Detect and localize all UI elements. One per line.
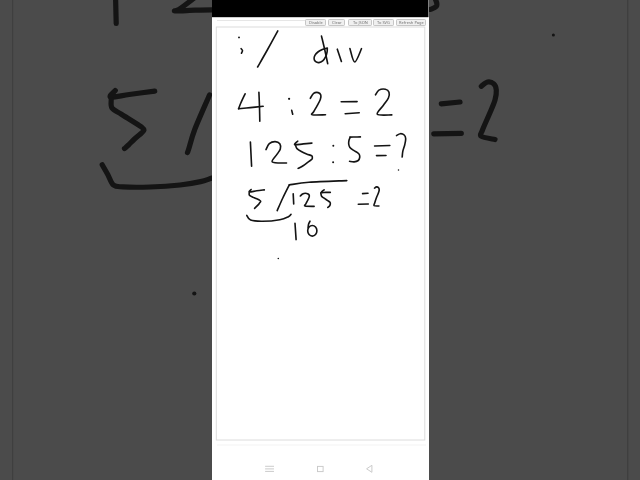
button[interactable]: Clear [328, 19, 345, 26]
staticText: Clear [332, 20, 342, 25]
button[interactable]: To JSON [348, 19, 372, 26]
button[interactable]: Disable [305, 19, 326, 26]
button[interactable]: Handwriting canvas [216, 27, 425, 440]
staticText: To JSON [353, 20, 368, 25]
button[interactable]: Recent apps [259, 459, 279, 479]
button[interactable]: Refresh Page [396, 19, 426, 26]
staticText: To SVG [377, 20, 390, 25]
button[interactable]: To SVG [373, 19, 394, 26]
button[interactable]: Home [310, 459, 330, 479]
staticText: Refresh Page [399, 20, 424, 25]
staticText: Disable [309, 20, 323, 25]
button[interactable]: Back [359, 459, 379, 479]
